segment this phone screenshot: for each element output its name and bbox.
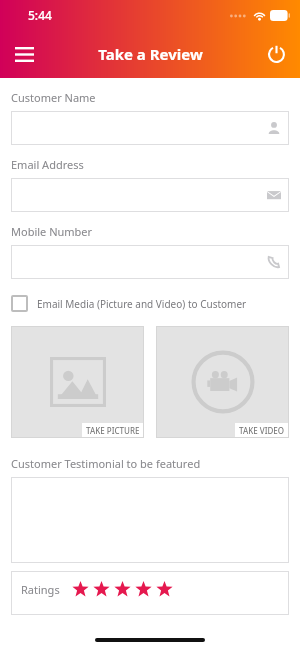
staticText: Email Address — [11, 157, 84, 172]
staticText: Customer Testimonial to be featured — [11, 456, 201, 471]
staticText: TAKE PICTURE — [86, 425, 140, 436]
staticText: Email Media (Picture and Video) to Custo… — [37, 297, 247, 311]
staticText: TAKE VIDEO — [239, 425, 285, 436]
button[interactable] — [11, 111, 289, 145]
button[interactable]: Power — [252, 30, 300, 78]
staticText: 5:44 — [28, 7, 52, 23]
button[interactable]: TAKE PICTURE — [11, 326, 144, 438]
staticText: Ratings — [21, 582, 60, 597]
button[interactable]: Menu — [0, 30, 48, 78]
button[interactable]: Email Media (Picture and Video) to Custo… — [11, 295, 289, 312]
staticText: Customer Name — [11, 90, 96, 105]
staticText: Mobile Number — [11, 224, 93, 239]
button[interactable] — [11, 477, 289, 563]
staticText: Take a Review — [98, 44, 203, 64]
button[interactable] — [11, 245, 289, 279]
button[interactable]: TAKE VIDEO — [156, 326, 289, 438]
button[interactable] — [11, 178, 289, 212]
button[interactable]: Ratings — [11, 571, 289, 615]
